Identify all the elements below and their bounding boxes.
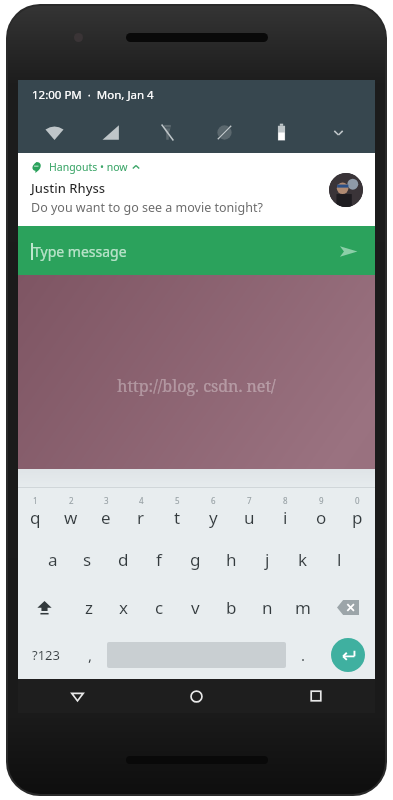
button[interactable]: Recents — [256, 679, 375, 713]
staticText: Type message — [33, 242, 127, 261]
button[interactable]: c — [141, 583, 177, 631]
button[interactable]: f — [141, 535, 177, 583]
staticText: m — [295, 596, 311, 619]
staticText: 0 — [355, 495, 360, 506]
staticText: . — [301, 645, 306, 665]
button[interactable]: 8 — [267, 488, 303, 535]
button[interactable]: 5 — [159, 488, 195, 535]
staticText: q — [30, 506, 41, 529]
button[interactable]: Type message — [18, 226, 375, 275]
button[interactable]: s — [70, 535, 105, 583]
staticText: h — [226, 548, 237, 571]
button[interactable]: 6 — [195, 488, 231, 535]
button[interactable]: Send — [335, 238, 361, 264]
staticText: a — [48, 548, 58, 571]
button[interactable]: Hangouts • now — [18, 153, 375, 226]
staticText: g — [190, 548, 201, 571]
button[interactable]: ?123 — [18, 631, 73, 679]
button[interactable]: 4 — [123, 488, 159, 535]
staticText: v — [191, 596, 200, 619]
button[interactable]: a — [35, 535, 70, 583]
button[interactable]: g — [177, 535, 213, 583]
button[interactable]: Back — [18, 679, 137, 713]
staticText: Justin Rhyss — [31, 179, 106, 197]
button[interactable]: n — [249, 583, 285, 631]
staticText: i — [283, 506, 288, 529]
staticText: 1 — [33, 495, 38, 506]
staticText: n — [262, 596, 273, 619]
button[interactable]: Do not disturb off — [196, 115, 253, 149]
button[interactable]: Backspace — [321, 583, 375, 631]
staticText: s — [83, 548, 92, 571]
staticText: t — [174, 506, 181, 529]
staticText: l — [337, 548, 342, 571]
staticText: o — [316, 506, 327, 529]
staticText: 8 — [283, 495, 288, 506]
button[interactable]: 2 — [53, 488, 88, 535]
staticText: p — [352, 506, 363, 529]
staticText: z — [85, 596, 93, 619]
staticText: , — [88, 645, 93, 665]
staticText: y — [209, 506, 218, 529]
staticText: j — [265, 548, 270, 571]
staticText: ?123 — [32, 646, 60, 664]
staticText: http://blog. csdn. net/ — [117, 375, 276, 397]
button[interactable]: 9 — [303, 488, 339, 535]
button[interactable]: m — [285, 583, 321, 631]
staticText: Do you want to go see a movie tonight? — [31, 199, 263, 216]
staticText: 4 — [139, 495, 144, 506]
button[interactable]: Contact photo — [329, 173, 363, 207]
button[interactable]: . — [286, 631, 320, 679]
button[interactable]: Battery — [253, 115, 310, 149]
staticText: k — [298, 548, 308, 571]
button[interactable]: Expand — [310, 115, 367, 149]
staticText: e — [101, 506, 111, 529]
button[interactable]: 0 — [339, 488, 375, 535]
staticText: r — [137, 506, 145, 529]
button[interactable]: 7 — [231, 488, 267, 535]
staticText: 2 — [69, 495, 74, 506]
button[interactable]: Enter — [331, 638, 365, 672]
staticText: 7 — [247, 495, 252, 506]
button[interactable]: v — [177, 583, 213, 631]
staticText: b — [226, 596, 237, 619]
button[interactable]: l — [321, 535, 357, 583]
staticText: w — [64, 506, 78, 529]
staticText: u — [244, 506, 255, 529]
button[interactable]: 3 — [88, 488, 123, 535]
staticText: 5 — [175, 495, 180, 506]
staticText: 12:00 PM · Mon, Jan 4 — [32, 87, 154, 103]
button[interactable]: x — [106, 583, 141, 631]
button[interactable]: Home — [137, 679, 256, 713]
button[interactable]: b — [213, 583, 249, 631]
button[interactable]: k — [285, 535, 321, 583]
button[interactable]: d — [105, 535, 141, 583]
button[interactable]: , — [73, 631, 107, 679]
staticText: x — [119, 596, 128, 619]
staticText: f — [156, 548, 162, 571]
staticText: 3 — [104, 495, 109, 506]
button[interactable]: Shift — [18, 583, 71, 631]
staticText: 9 — [319, 495, 324, 506]
staticText: c — [155, 596, 164, 619]
button[interactable]: Signal — [82, 115, 139, 149]
staticText: 6 — [211, 495, 216, 506]
button[interactable]: h — [213, 535, 249, 583]
staticText: d — [118, 548, 129, 571]
button[interactable]: Wi-Fi — [26, 115, 82, 149]
button[interactable]: z — [71, 583, 106, 631]
button[interactable]: Flashlight off — [139, 115, 196, 149]
button[interactable]: j — [249, 535, 285, 583]
button[interactable]: 1 — [18, 488, 53, 535]
staticText: Hangouts • now — [49, 160, 128, 174]
